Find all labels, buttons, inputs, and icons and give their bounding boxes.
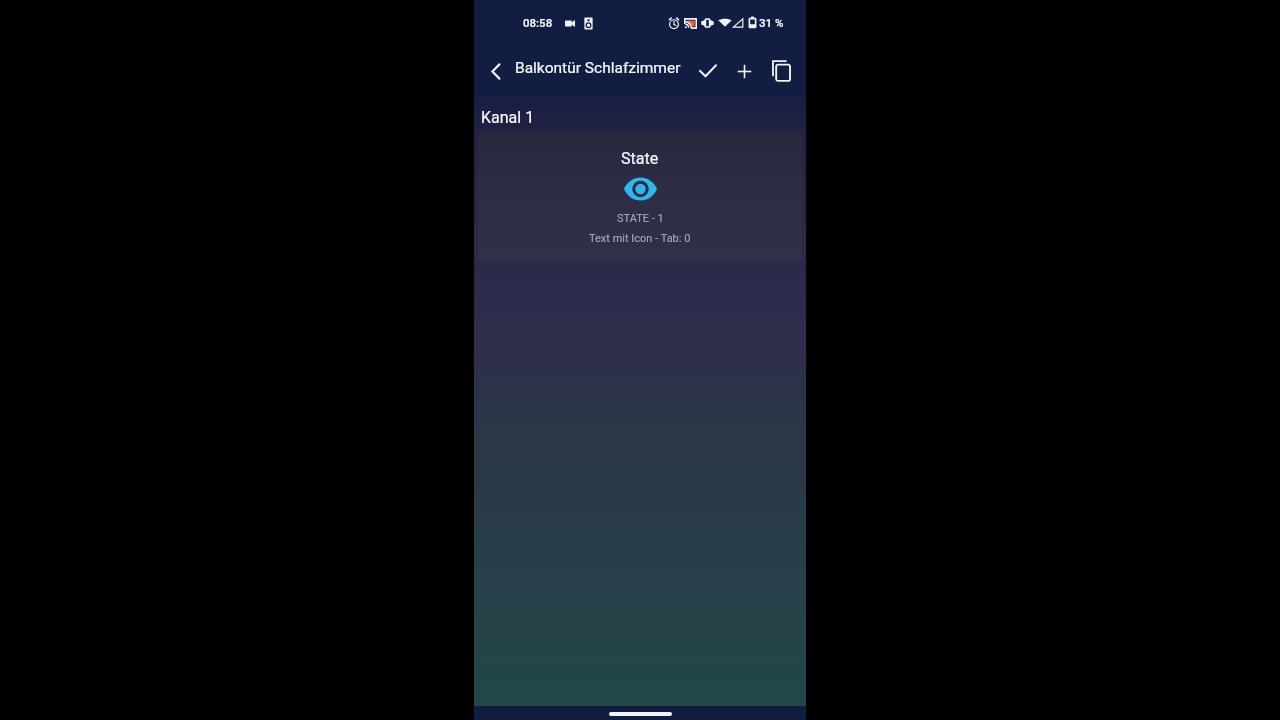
button[interactable]: Save [690,47,726,95]
staticText: Balkontür Schlafzimmer [515,59,681,77]
staticText: Kanal 1 [481,108,535,127]
button[interactable]: Add [726,47,762,95]
button[interactable]: State [478,131,802,261]
button[interactable]: Back [476,47,516,95]
staticText: 31 % [759,16,784,29]
button[interactable]: Copy [763,47,799,95]
staticText: 08:58 [523,16,553,29]
staticText: Text mit Icon - Tab: 0 [589,232,691,245]
staticText: STATE - 1 [617,212,664,225]
staticText: State [621,149,659,168]
